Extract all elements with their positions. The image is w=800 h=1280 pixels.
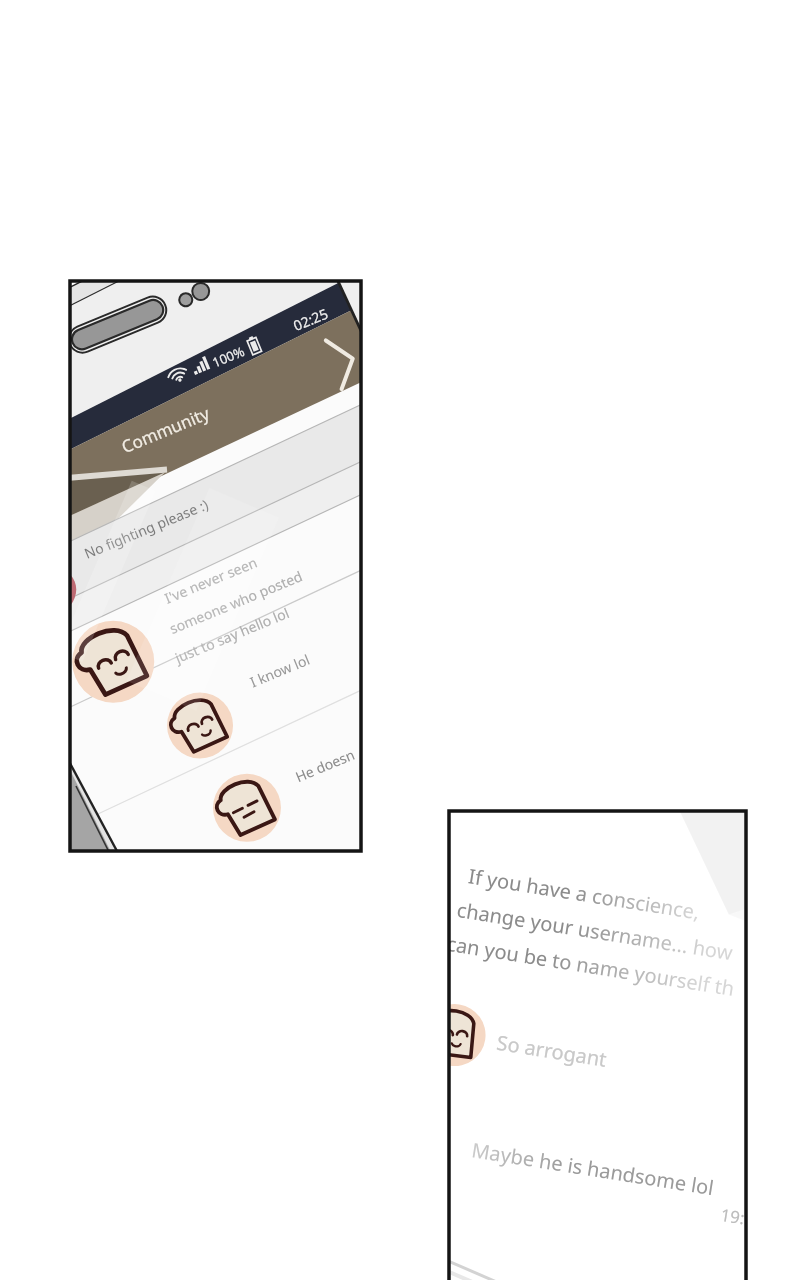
button[interactable]: Message: Maybe he is handsome lol <box>449 1120 746 1215</box>
button[interactable]: Avatar <box>170 694 236 760</box>
button[interactable]: Message: I've never seen someone who pos… <box>70 555 361 650</box>
button[interactable]: Message: So arrogant <box>449 1000 746 1095</box>
button[interactable]: Message: I know lol <box>70 650 361 740</box>
button[interactable]: Community app bar <box>70 395 361 490</box>
button[interactable]: More options <box>318 330 361 405</box>
button[interactable]: Message: If you have a conscience, chang… <box>449 860 746 980</box>
button[interactable]: Avatar <box>74 625 156 707</box>
button[interactable]: Pinned notice: No fighting please <box>70 470 361 555</box>
button[interactable]: Message: He doesn <box>70 740 361 830</box>
button[interactable]: Avatar <box>215 775 283 843</box>
